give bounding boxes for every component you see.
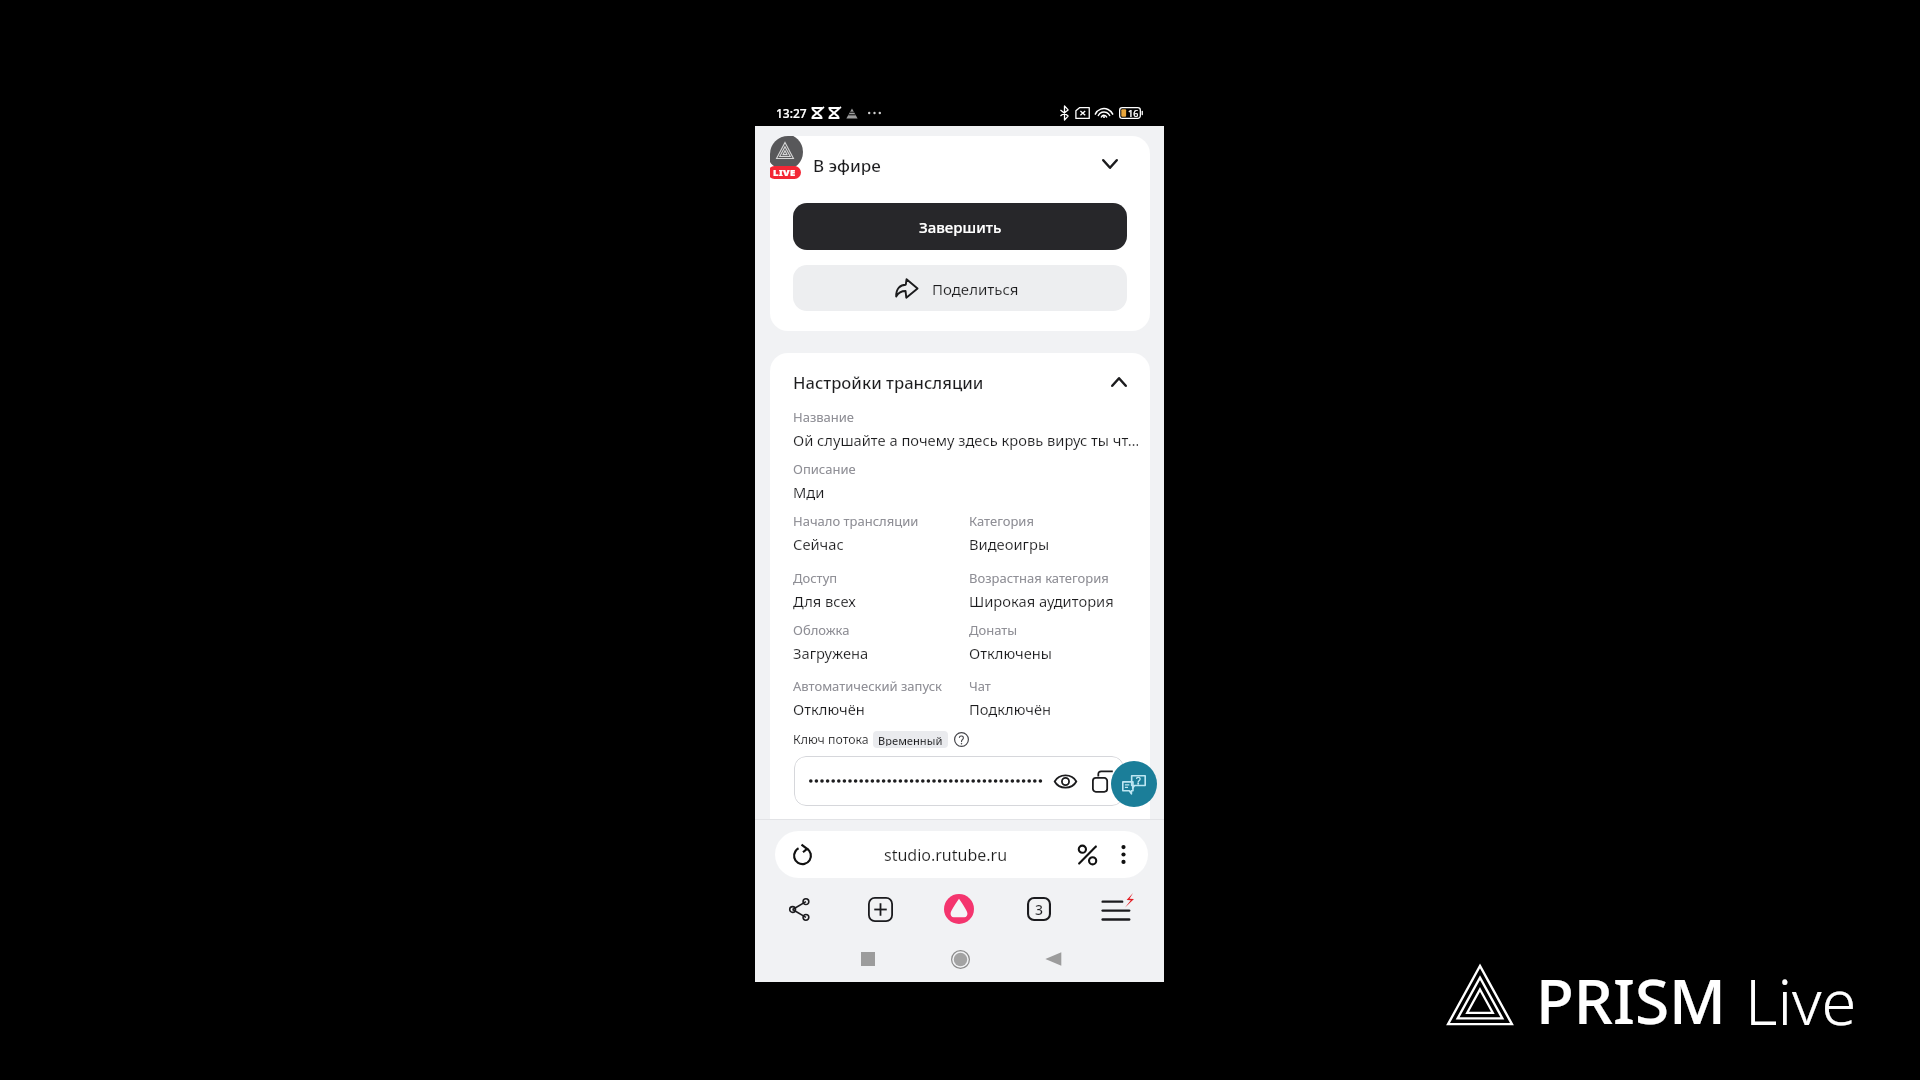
staticText: Отключён xyxy=(793,699,865,719)
staticText: Описание xyxy=(793,460,856,478)
button[interactable]: More options xyxy=(1109,831,1137,878)
button[interactable]: Tabs: 3 xyxy=(1017,887,1061,931)
staticText: Автоматический запуск xyxy=(793,677,942,695)
staticText: Чат xyxy=(969,677,991,695)
button[interactable]: Help chat xyxy=(1111,761,1157,807)
button[interactable]: Настройки трансляции xyxy=(793,361,1127,403)
staticText: studio.rutube.ru xyxy=(884,844,1008,866)
staticText: Широкая аудитория xyxy=(969,591,1114,611)
button[interactable]: Collapse live card xyxy=(1094,148,1126,180)
button[interactable]: Поделиться xyxy=(793,265,1127,311)
staticText: Мди xyxy=(793,482,825,502)
staticText: Категория xyxy=(969,512,1034,530)
staticText: 16 xyxy=(1128,107,1139,119)
staticText: Название xyxy=(793,408,855,426)
staticText: Начало трансляции xyxy=(793,512,919,530)
staticText: Загружена xyxy=(793,643,869,663)
staticText: Возрастная категория xyxy=(969,569,1109,587)
staticText: 3 xyxy=(1035,900,1044,919)
button[interactable]: Share page xyxy=(777,887,821,931)
staticText: PRISM xyxy=(1536,958,1726,1032)
button[interactable]: Help xyxy=(954,732,969,747)
staticText: 13:27 xyxy=(776,105,807,121)
button[interactable]: Copy key xyxy=(1088,756,1116,806)
staticText: Видеоигры xyxy=(969,534,1050,554)
staticText: Временный xyxy=(878,733,943,746)
staticText: Подключён xyxy=(969,699,1052,719)
staticText: Для всех xyxy=(793,591,856,611)
button[interactable]: Alice assistant xyxy=(937,887,981,931)
button[interactable]: New tab xyxy=(858,887,902,931)
button[interactable]: Menu xyxy=(1096,887,1140,931)
staticText: Настройки трансляции xyxy=(793,371,984,394)
staticText: Донаты xyxy=(969,621,1018,639)
staticText: LIVE xyxy=(773,166,796,179)
button[interactable]: Reader mode xyxy=(1069,831,1105,878)
staticText: Ключ потока xyxy=(793,731,869,748)
button[interactable]: Завершить xyxy=(793,203,1127,250)
staticText: Завершить xyxy=(919,217,1002,237)
staticText: Поделиться xyxy=(932,279,1019,299)
staticText: Ой слушайте а почему здесь кровь вирус т… xyxy=(793,430,1138,450)
staticText: Отключены xyxy=(969,643,1052,663)
button[interactable]: Show key xyxy=(1049,756,1081,806)
staticText: Live xyxy=(1745,958,1857,1032)
staticText: Обложка xyxy=(793,621,850,639)
button[interactable]: studio.rutube.ru xyxy=(775,831,1148,878)
staticText: Сейчас xyxy=(793,534,844,554)
staticText: В эфире xyxy=(813,154,881,175)
staticText: Доступ xyxy=(793,569,838,587)
